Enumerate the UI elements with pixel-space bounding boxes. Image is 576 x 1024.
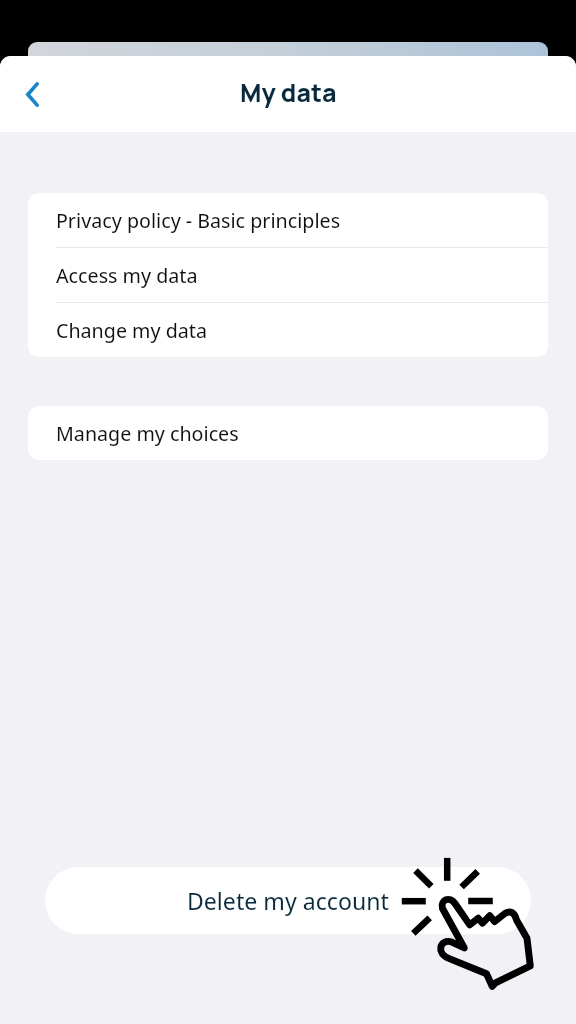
staticText: Delete my account <box>187 885 389 916</box>
staticText: My data <box>240 75 337 109</box>
button[interactable]: Manage my choices <box>28 406 548 460</box>
button[interactable]: Privacy policy - Basic principles <box>28 193 548 247</box>
staticText: Privacy policy - Basic principles <box>56 207 341 234</box>
staticText: Manage my choices <box>56 420 239 447</box>
button[interactable]: Delete my account <box>45 867 531 934</box>
button[interactable]: Change my data <box>28 303 548 357</box>
button[interactable]: Back <box>9 71 55 117</box>
staticText: Change my data <box>56 317 208 344</box>
staticText: Access my data <box>56 262 198 289</box>
button[interactable]: Access my data <box>28 248 548 302</box>
